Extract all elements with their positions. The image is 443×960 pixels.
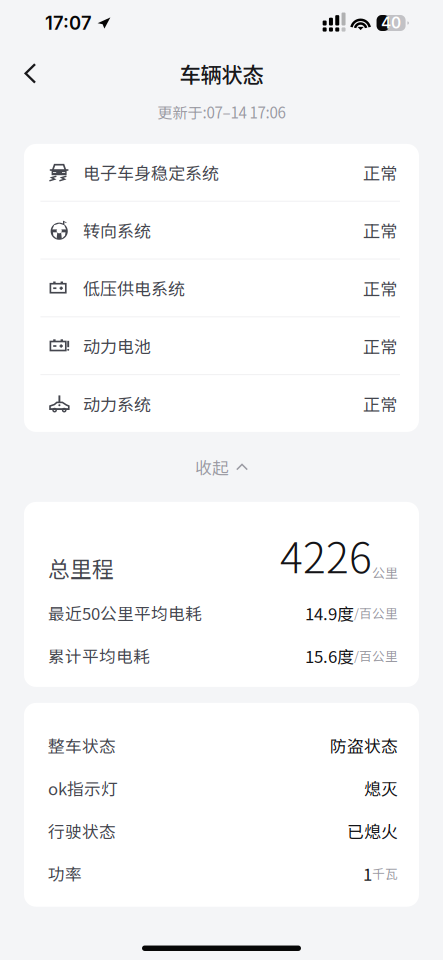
staticText: 最近50公里平均电耗 — [48, 601, 202, 625]
staticText: 1 — [363, 861, 372, 885]
staticText: 转向系统 — [83, 218, 151, 242]
staticText: 电子车身稳定系统 — [83, 160, 219, 185]
button[interactable]: 收起 — [195, 447, 248, 487]
button[interactable]: 电子车身稳定系统 — [24, 144, 419, 201]
staticText: 千瓦 — [372, 864, 398, 882]
staticText: 累计平均电耗 — [48, 643, 150, 668]
staticText: 熄灭 — [364, 776, 398, 800]
staticText: 防盗状态 — [330, 733, 398, 757]
staticText: 行驶状态 — [48, 819, 116, 843]
staticText: 40 — [381, 14, 401, 32]
staticText: 正常 — [363, 333, 397, 358]
button[interactable]: 动力系统 — [24, 375, 419, 432]
staticText: 总里程 — [48, 552, 114, 583]
staticText: 功率 — [48, 861, 82, 885]
button[interactable]: 动力电池 — [24, 317, 419, 374]
button[interactable]: 低压供电系统 — [24, 259, 419, 316]
button[interactable]: 转向系统 — [24, 202, 419, 258]
staticText: 正常 — [363, 218, 397, 243]
staticText: 15.6度 — [305, 643, 354, 668]
staticText: 正常 — [363, 160, 397, 185]
staticText: 已熄火 — [347, 818, 398, 843]
button[interactable]: Back — [0, 52, 55, 95]
staticText: 公里 — [372, 563, 398, 581]
staticText: 14.9度 — [305, 601, 354, 625]
staticText: /百公里 — [354, 604, 398, 622]
staticText: /百公里 — [354, 646, 398, 665]
staticText: 收起 — [195, 455, 229, 479]
staticText: ok指示灯 — [48, 776, 118, 800]
staticText: 更新于:07–14 17:06 — [157, 101, 285, 123]
staticText: 正常 — [363, 275, 397, 300]
staticText: 低压供电系统 — [83, 276, 185, 300]
staticText: 17:07 — [45, 12, 92, 34]
staticText: 正常 — [363, 391, 397, 416]
staticText: 动力电池 — [83, 333, 151, 358]
staticText: 车辆状态 — [179, 58, 263, 89]
staticText: 整车状态 — [48, 733, 116, 757]
staticText: 动力系统 — [83, 391, 151, 416]
staticText: 4226 — [280, 524, 372, 585]
